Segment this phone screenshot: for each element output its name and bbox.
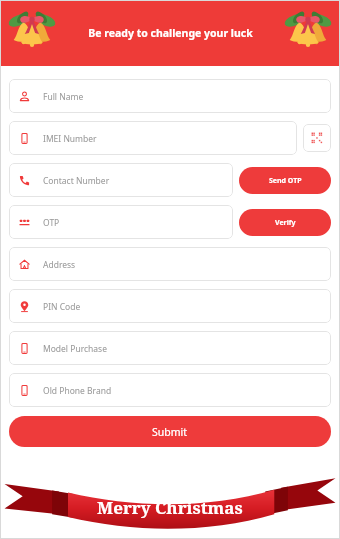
button[interactable]: Submit — [9, 416, 331, 447]
button[interactable]: Scan QR code — [303, 124, 331, 152]
staticText: Send OTP — [269, 176, 302, 186]
staticText: OTP — [43, 217, 60, 229]
button[interactable]: Full Name — [9, 79, 331, 113]
staticText: Submit — [152, 425, 188, 439]
button[interactable]: Model Purchase — [9, 331, 331, 365]
staticText: Contact Number — [43, 175, 110, 187]
button[interactable]: OTP — [9, 205, 233, 239]
staticText: Merry Christmas — [97, 496, 243, 519]
button[interactable]: PIN Code — [9, 289, 331, 323]
button[interactable]: IMEI Number — [9, 121, 297, 155]
button[interactable]: Send OTP — [239, 167, 331, 194]
staticText: IMEI Number — [43, 133, 97, 145]
staticText: Old Phone Brand — [43, 385, 112, 397]
button[interactable]: Old Phone Brand — [9, 373, 331, 407]
staticText: Full Name — [43, 91, 84, 103]
staticText: Model Purchase — [43, 343, 107, 355]
staticText: Address — [43, 259, 76, 271]
button[interactable]: Address — [9, 247, 331, 281]
staticText: Verify — [275, 218, 296, 228]
staticText: Be ready to challenge your luck — [88, 26, 253, 40]
button[interactable]: Verify — [239, 209, 331, 236]
button[interactable]: Contact Number — [9, 163, 233, 197]
staticText: PIN Code — [43, 301, 81, 313]
